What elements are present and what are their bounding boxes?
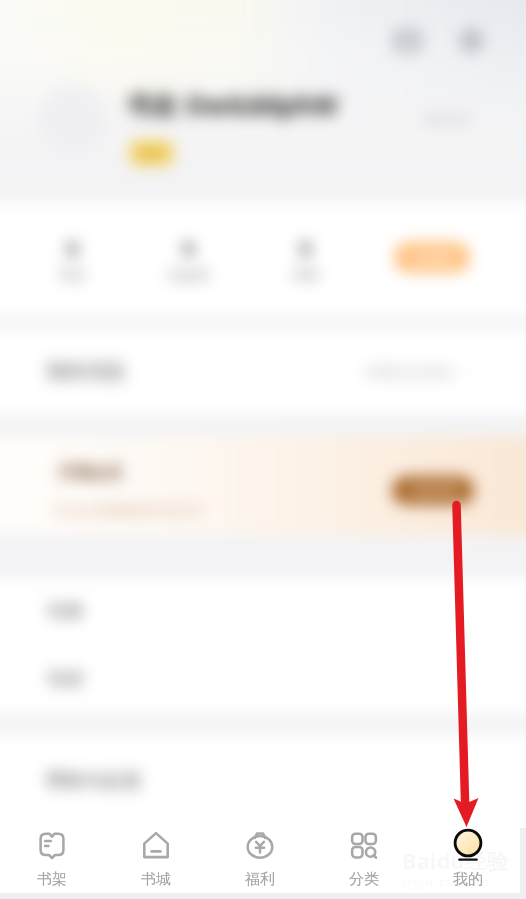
- staticText: VIP会员免费畅读全站好书: [52, 501, 203, 519]
- staticText: 分类: [349, 870, 379, 889]
- staticText: 书评: [46, 668, 84, 692]
- staticText: 帮助与反馈: [46, 769, 141, 793]
- staticText: 福利: [245, 870, 275, 889]
- staticText: 开通会员: [58, 463, 122, 483]
- staticText: 代金券: [167, 267, 209, 285]
- button[interactable]: 福利 Benefits: [208, 827, 312, 893]
- staticText: 0: [67, 236, 78, 262]
- staticText: 0: [183, 236, 194, 262]
- staticText: 立即开通: [409, 483, 457, 498]
- staticText: 书豆: [58, 267, 86, 285]
- button[interactable]: Scan QR code: [391, 24, 423, 56]
- staticText: 我的消息: [46, 359, 126, 384]
- button[interactable]: 分类 Categories: [312, 827, 416, 893]
- button[interactable]: 我的消息: [0, 329, 526, 414]
- button[interactable]: 书评: [0, 646, 526, 714]
- button[interactable]: 0: [130, 236, 246, 285]
- button[interactable]: 书城 Bookstore: [104, 827, 208, 893]
- staticText: jingyan.baidu.com: [402, 875, 489, 889]
- button[interactable]: 立即开通: [392, 476, 474, 505]
- staticText: 书架: [37, 870, 67, 889]
- staticText: Baidu经验: [402, 845, 509, 875]
- button[interactable]: 开通会员: [0, 436, 526, 535]
- staticText: 我的: [453, 870, 483, 889]
- staticText: 书友 OwGddphW: [126, 87, 338, 123]
- button[interactable]: 0: [247, 236, 363, 285]
- staticText: 书券: [291, 267, 319, 285]
- button[interactable]: 去充值: [394, 242, 470, 273]
- staticText: 书单: [46, 600, 84, 624]
- staticText: 去充值: [413, 250, 452, 266]
- staticText: LV1: [142, 146, 161, 161]
- button[interactable]: 我的 Mine: [416, 827, 520, 893]
- staticText: 书城: [141, 870, 171, 889]
- button[interactable]: 书单: [0, 578, 526, 646]
- staticText: 0: [300, 236, 311, 262]
- button[interactable]: Settings: [455, 24, 487, 56]
- button[interactable]: LV1: [130, 141, 173, 165]
- button[interactable]: 0: [14, 236, 130, 285]
- button[interactable]: 书架 Bookshelf: [0, 827, 104, 893]
